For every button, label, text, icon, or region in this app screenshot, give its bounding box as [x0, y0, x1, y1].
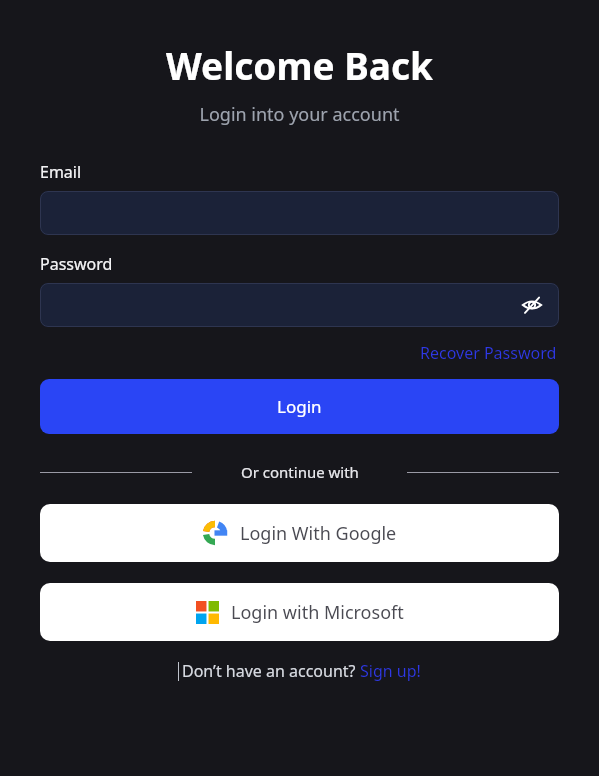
button[interactable]: Sign up! — [360, 660, 421, 682]
button[interactable]: Login with Microsoft — [40, 583, 559, 641]
button[interactable]: Login With Google — [40, 504, 559, 562]
button[interactable]: Show password — [40, 283, 559, 327]
staticText: Welcome Back — [0, 40, 599, 90]
staticText: Don’t have an account? — [182, 660, 360, 682]
staticText: Password — [40, 253, 113, 275]
staticText: Email — [40, 161, 82, 183]
staticText: Login — [277, 395, 322, 418]
staticText: Login With Google — [240, 521, 397, 546]
button[interactable]: Recover Password — [418, 340, 559, 366]
staticText: Recover Password — [420, 342, 557, 364]
button[interactable]: Show password — [519, 292, 545, 318]
button[interactable] — [40, 191, 559, 235]
staticText: Sign up! — [360, 660, 421, 682]
staticText: Login with Microsoft — [231, 600, 404, 625]
staticText: Login into your account — [0, 102, 599, 127]
staticText: Or continue with — [241, 462, 359, 482]
button[interactable]: Login — [40, 379, 559, 434]
